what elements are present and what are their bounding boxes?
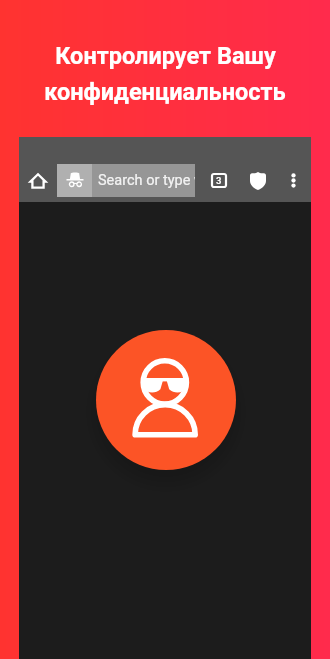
button[interactable]: Search or type web address bbox=[57, 164, 195, 197]
button[interactable]: Tabs bbox=[207, 168, 231, 192]
button[interactable]: Home bbox=[26, 169, 50, 193]
staticText: Контролирует Вашу bbox=[55, 42, 276, 70]
button[interactable]: Incognito mode bbox=[96, 330, 236, 470]
button[interactable]: Security bbox=[246, 169, 270, 193]
staticText: Search or type web address bbox=[98, 172, 195, 189]
staticText: 3 bbox=[216, 175, 222, 186]
button[interactable]: More options bbox=[281, 168, 305, 192]
staticText: конфиденциальность bbox=[44, 78, 286, 106]
